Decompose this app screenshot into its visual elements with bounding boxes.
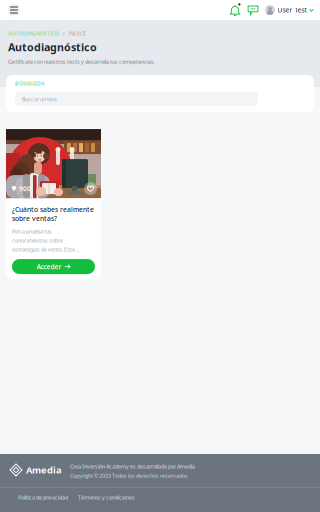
staticText: Crea Inversión Academy es desarrollado p… [70, 463, 195, 470]
button[interactable]: Notifications [228, 3, 242, 17]
button[interactable]: Messages [245, 3, 261, 17]
staticText: Copyright © 2025 Todos los derechos rese… [70, 472, 188, 479]
staticText: AUTODIAGNÓSTICO [8, 30, 59, 37]
staticText: > [62, 30, 65, 37]
staticText: ¿Cuánto sabes realmente sobre ventas? [12, 205, 94, 223]
staticText: Términos y condiciones [78, 494, 135, 501]
staticText: BÚSQUEDA [15, 80, 45, 87]
staticText: Buscar un test [22, 95, 57, 103]
staticText: Acceder [36, 262, 61, 271]
staticText: 900 [19, 184, 31, 193]
staticText: Certifícate con nuestros tests y desarro… [8, 58, 155, 65]
button[interactable]: AUTODIAGNÓSTICO [8, 30, 59, 37]
button[interactable]: Buscar un test [15, 92, 258, 106]
staticText: estrategias de venta. Este… [12, 246, 79, 253]
staticText: Política de privacidad [18, 494, 68, 501]
staticText: User Test [277, 6, 306, 14]
staticText: ÍNDICE [68, 30, 86, 37]
staticText: conocimientos sobre [12, 237, 63, 244]
button[interactable]: Política de privacidad [18, 494, 68, 501]
button[interactable]: Acceder [12, 259, 95, 274]
button[interactable]: Menu [6, 2, 22, 18]
staticText: Amedia [26, 464, 62, 476]
staticText: Autodiagnóstico [8, 40, 97, 54]
button[interactable]: Favourite [84, 182, 97, 195]
button[interactable]: User Test [265, 3, 314, 17]
button[interactable]: Términos y condiciones [78, 494, 135, 501]
staticText: Pon a prueba tus [12, 228, 52, 235]
